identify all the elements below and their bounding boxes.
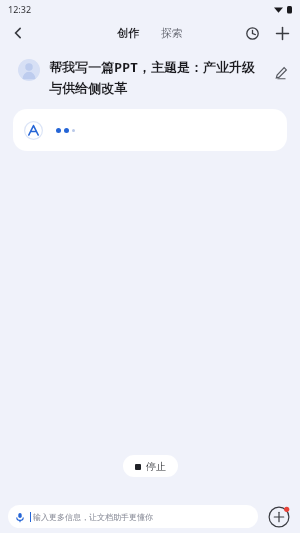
staticText: 创作 [117,26,139,40]
button[interactable]: 停止 [123,455,178,477]
staticText: 停止 [146,460,166,473]
button[interactable]: Add attachment [266,504,292,530]
button[interactable]: 输入更多信息，让文档助手更懂你 [8,505,258,528]
button[interactable]: Back [4,19,32,47]
button[interactable] [13,109,287,151]
button[interactable]: 探索 [155,22,189,44]
staticText: 探索 [161,26,183,40]
staticText: 输入更多信息，让文档助手更懂你 [33,512,153,522]
button[interactable]: History [240,21,264,45]
staticText: 帮我写一篇PPT，主题是：产业升级与供给侧改革 [49,58,264,97]
button[interactable]: 帮我写一篇PPT，主题是：产业升级与供给侧改革 [18,58,292,97]
button[interactable]: Edit [268,60,292,84]
button[interactable]: New chat [270,21,294,45]
staticText: 12:32 [8,3,32,15]
button[interactable]: 创作 [111,22,145,44]
